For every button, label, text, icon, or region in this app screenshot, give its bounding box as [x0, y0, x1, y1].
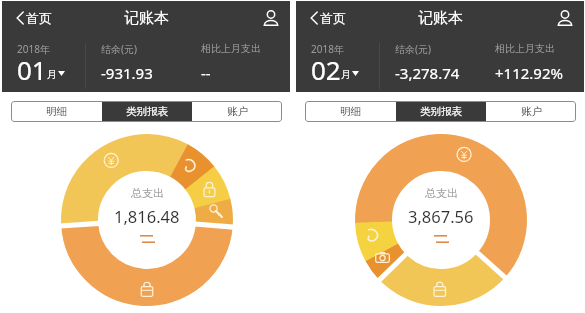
staticText: 01	[17, 52, 47, 87]
staticText: 结余(元)	[395, 42, 431, 56]
button[interactable]: 明细	[11, 101, 102, 122]
staticText: 首页	[320, 10, 346, 26]
staticText: 明细	[340, 105, 361, 118]
button[interactable]: 类别报表	[396, 101, 486, 122]
staticText: 结余(元)	[101, 42, 137, 56]
staticText: 类别报表	[126, 105, 168, 118]
button[interactable]: 01	[17, 52, 65, 87]
button[interactable]: 首页	[14, 8, 54, 28]
staticText: -931.93	[101, 63, 153, 83]
staticText: 2018年	[17, 42, 50, 56]
staticText: +112.92%	[495, 63, 563, 83]
staticText: 1,816.48	[114, 205, 180, 227]
staticText: 账户	[227, 105, 248, 118]
staticText: 2018年	[311, 42, 344, 56]
staticText: 总支出	[131, 186, 164, 200]
staticText: -3,278.74	[395, 63, 460, 83]
staticText: 账户	[521, 105, 542, 118]
staticText: 首页	[26, 10, 52, 26]
staticText: 类别报表	[420, 105, 462, 118]
staticText: --	[201, 63, 211, 83]
button[interactable]: 02	[311, 52, 359, 87]
staticText: 记账本	[124, 9, 169, 28]
button[interactable]: 账户	[192, 101, 282, 122]
staticText: 3,867.56	[408, 205, 474, 227]
button[interactable]: Profile	[256, 3, 286, 33]
button[interactable]: Profile	[550, 3, 580, 33]
button[interactable]: 明细	[305, 101, 396, 122]
staticText: 月	[341, 68, 351, 81]
staticText: 相比上月支出	[201, 42, 261, 55]
staticText: 总支出	[425, 186, 458, 200]
staticText: 相比上月支出	[495, 42, 555, 55]
button[interactable]: 首页	[308, 8, 348, 28]
staticText: 02	[311, 52, 341, 87]
staticText: 月	[47, 68, 57, 81]
staticText: 明细	[46, 105, 67, 118]
button[interactable]: 账户	[486, 101, 576, 122]
button[interactable]: 类别报表	[102, 101, 192, 122]
staticText: 记账本	[418, 9, 463, 28]
